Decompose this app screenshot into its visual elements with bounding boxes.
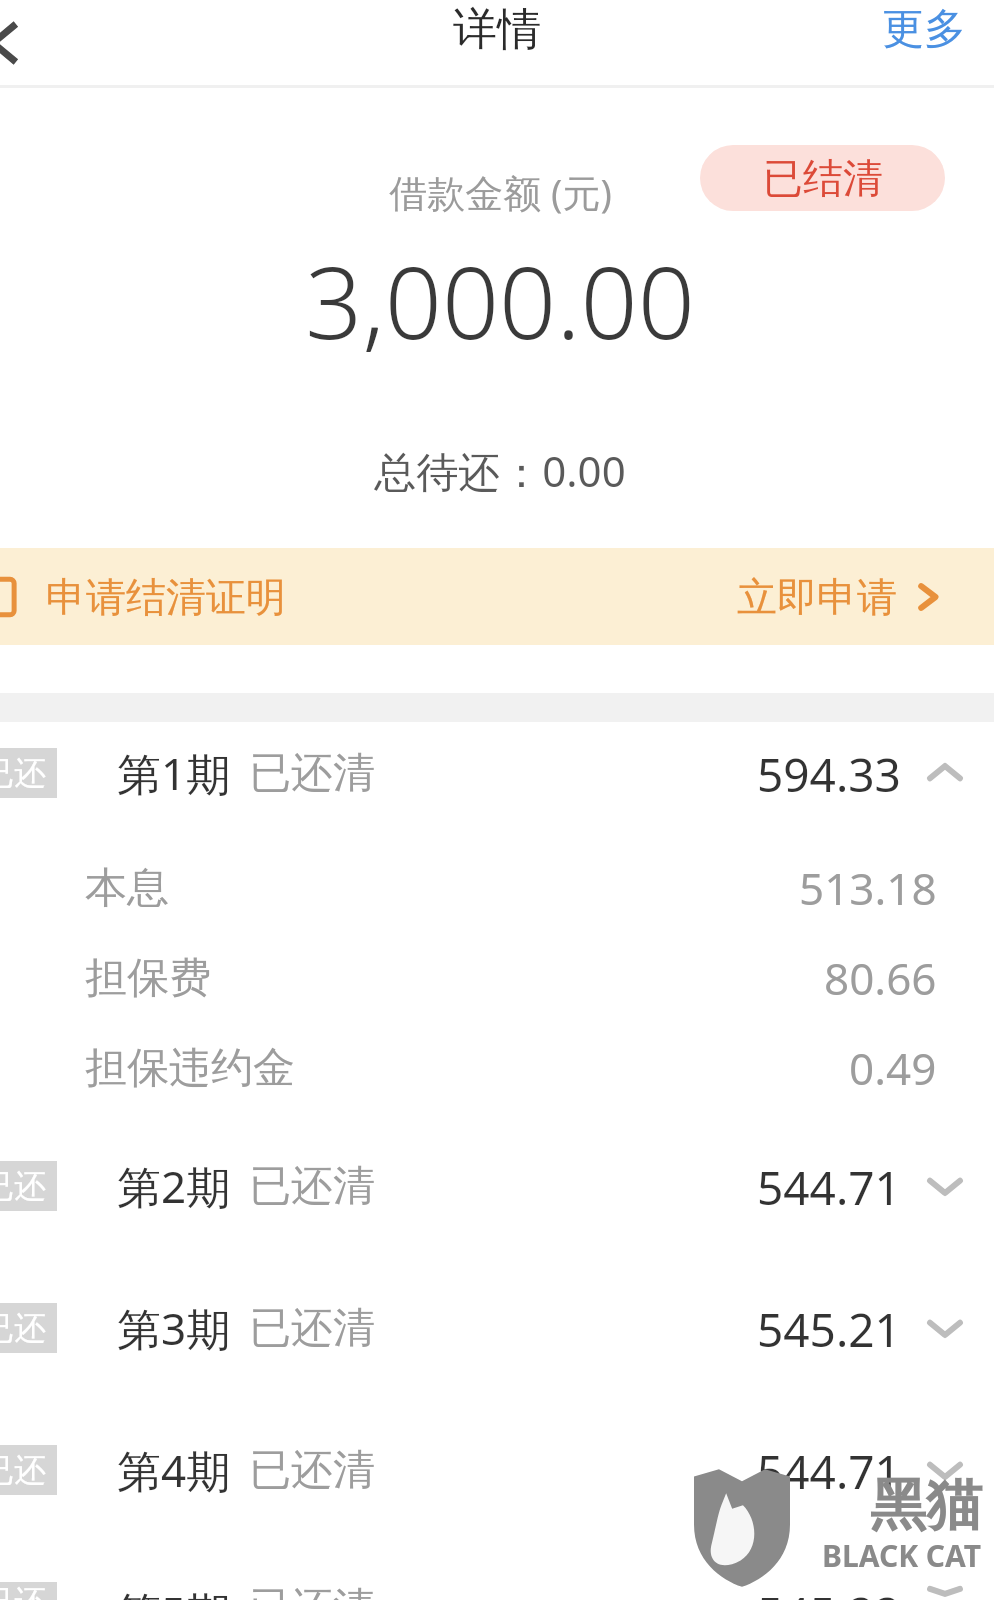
staticText: 担保费 xyxy=(85,952,211,1005)
button[interactable]: 已还 xyxy=(0,1298,994,1358)
other: Expand xyxy=(923,1306,967,1350)
button[interactable]: Back xyxy=(0,15,30,71)
staticText: 已还清 xyxy=(249,747,375,800)
staticText: 513.18 xyxy=(799,858,937,918)
staticText: 已还 xyxy=(0,1166,46,1206)
staticText: 已还 xyxy=(0,1582,46,1600)
other: Expand xyxy=(923,1448,967,1492)
staticText: 申请结清证明 xyxy=(46,572,286,622)
staticText: 3,000.00 xyxy=(305,232,695,368)
staticText: 黑猫 xyxy=(870,1470,982,1541)
button[interactable]: 已结清 xyxy=(700,145,945,211)
staticText: 立即申请 xyxy=(737,572,897,622)
button[interactable]: 已还 xyxy=(0,1582,994,1600)
staticText: 已还 xyxy=(0,1450,46,1490)
other: Collapse xyxy=(923,751,967,795)
button[interactable]: 更多 xyxy=(854,0,994,64)
button[interactable]: 已还 xyxy=(0,743,994,803)
staticText: 已还清 xyxy=(249,1582,375,1600)
other: Expand xyxy=(923,1164,967,1208)
staticText: 已还清 xyxy=(249,1302,375,1355)
staticText: 已还 xyxy=(0,753,46,793)
staticText: 已结清 xyxy=(763,153,883,203)
other: Expand xyxy=(923,1582,967,1600)
staticText: 544.71 xyxy=(757,1156,901,1216)
staticText: 借款金额 (元) xyxy=(389,166,612,218)
staticText: 详情 xyxy=(453,2,541,57)
staticText: 第3期 xyxy=(117,1298,231,1358)
staticText: 544.71 xyxy=(757,1440,901,1500)
staticText: 545.21 xyxy=(757,1298,901,1358)
button[interactable]: 已还 xyxy=(0,1440,994,1500)
staticText: 本息 xyxy=(85,862,169,915)
staticText: 更多 xyxy=(882,3,966,56)
staticText: 已还 xyxy=(0,1308,46,1348)
staticText: 第2期 xyxy=(117,1156,231,1216)
staticText: 担保违约金 xyxy=(85,1042,295,1095)
staticText: 594.33 xyxy=(757,743,901,803)
button[interactable]: 申请结清证明 xyxy=(0,548,994,645)
staticText: 545.22 xyxy=(757,1582,901,1600)
staticText: 第4期 xyxy=(117,1440,231,1500)
staticText: 已还清 xyxy=(249,1160,375,1213)
staticText: 80.66 xyxy=(824,948,937,1008)
staticText: BLACK CAT xyxy=(822,1535,982,1576)
staticText: 已还清 xyxy=(249,1444,375,1497)
staticText: 总待还：0.00 xyxy=(374,442,626,499)
staticText: 0.49 xyxy=(849,1038,937,1098)
staticText: 第5期 xyxy=(117,1582,231,1600)
button[interactable]: 已还 xyxy=(0,1156,994,1216)
staticText: 第1期 xyxy=(117,743,231,803)
